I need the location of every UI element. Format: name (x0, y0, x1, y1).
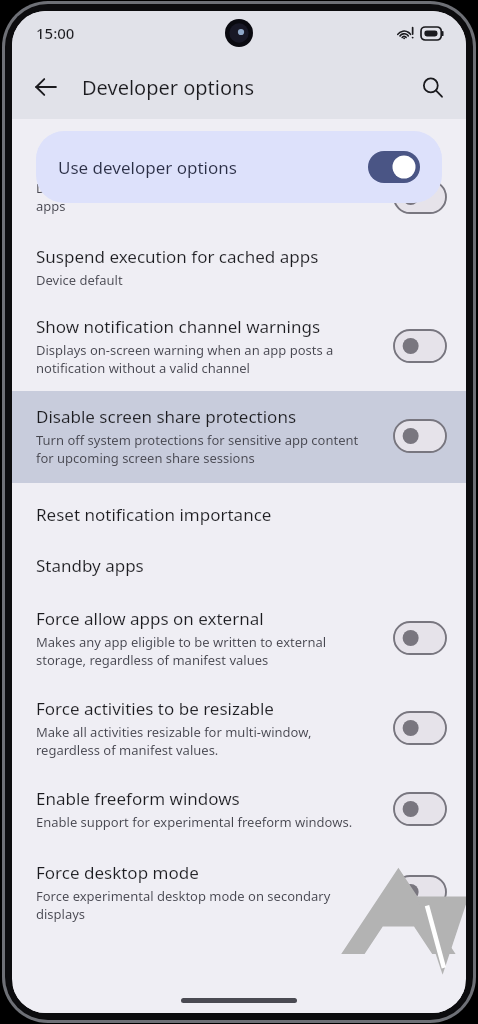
staticText: Standby apps (36, 554, 144, 577)
staticText: 15:00 (36, 23, 75, 43)
staticText: Display App Not Responding dialog for ba… (36, 179, 350, 215)
staticText: Force activities to be resizable (36, 697, 274, 720)
button[interactable]: Back (22, 63, 70, 111)
staticText: Displays on-screen warning when an app p… (36, 341, 334, 377)
button[interactable]: Disable screen share protections (12, 391, 466, 483)
button[interactable]: Display App Not Responding dialog for ba… (12, 179, 466, 229)
staticText: Force experimental desktop mode on secon… (36, 887, 331, 923)
button[interactable]: Reset notification importance (12, 483, 466, 544)
button[interactable]: Standby apps (12, 544, 466, 595)
staticText: Show notification channel warnings (36, 315, 321, 338)
staticText: Suspend execution for cached apps (36, 245, 319, 268)
button[interactable]: Force desktop mode (12, 847, 466, 933)
staticText: Developer options (82, 74, 255, 101)
button[interactable]: Force activities to be resizable (12, 683, 466, 773)
staticText: Reset notification importance (36, 503, 272, 526)
staticText: Force allow apps on external (36, 607, 264, 630)
staticText: Make all activities resizable for multi-… (36, 723, 312, 759)
button[interactable]: Use developer options (36, 131, 442, 203)
staticText: Use developer options (58, 156, 237, 179)
staticText: Force desktop mode (36, 861, 199, 884)
button[interactable]: Force allow apps on external (12, 595, 466, 683)
staticText: Enable freeform windows (36, 787, 240, 810)
button[interactable]: Show notification channel warnings (12, 305, 466, 391)
staticText: Disable screen share protections (36, 405, 297, 428)
staticText: Makes any app eligible to be written to … (36, 633, 327, 669)
button[interactable]: Suspend execution for cached apps (12, 229, 466, 305)
button[interactable]: Enable freeform windows (12, 773, 466, 847)
staticText: Turn off system protections for sensitiv… (36, 431, 359, 467)
staticText: Enable support for experimental freeform… (36, 813, 353, 831)
staticText: Device default (36, 271, 123, 289)
button[interactable]: Search (410, 65, 454, 109)
